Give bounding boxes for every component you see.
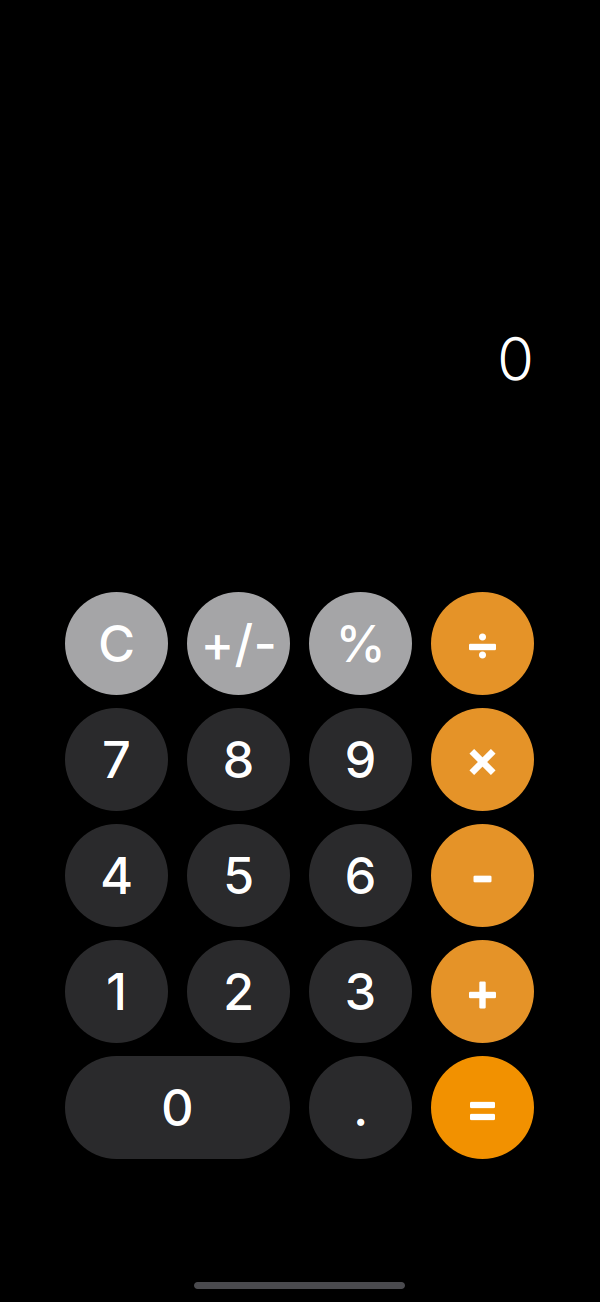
button[interactable]: Multiply bbox=[431, 708, 534, 811]
button[interactable]: Clear bbox=[65, 592, 168, 695]
button[interactable]: 7 bbox=[65, 708, 168, 811]
staticText: % bbox=[335, 613, 385, 674]
staticText: 4 bbox=[100, 845, 133, 906]
staticText: 5 bbox=[223, 845, 254, 906]
staticText: 9 bbox=[344, 729, 376, 790]
button[interactable]: Percent bbox=[309, 592, 412, 695]
button[interactable]: 8 bbox=[187, 708, 290, 811]
staticText: . bbox=[353, 1077, 368, 1138]
button[interactable]: Change sign bbox=[187, 592, 290, 695]
button[interactable]: 5 bbox=[187, 824, 290, 927]
button[interactable]: 9 bbox=[309, 708, 412, 811]
staticText: 8 bbox=[222, 729, 254, 790]
button[interactable]: 4 bbox=[65, 824, 168, 927]
button[interactable]: Divide bbox=[431, 592, 534, 695]
button[interactable]: Equals bbox=[431, 1056, 534, 1159]
staticText: 2 bbox=[223, 961, 254, 1022]
button[interactable]: Add bbox=[431, 940, 534, 1043]
button[interactable]: Subtract bbox=[431, 824, 534, 927]
button[interactable]: 1 bbox=[65, 940, 168, 1043]
button[interactable]: 2 bbox=[187, 940, 290, 1043]
button[interactable]: 6 bbox=[309, 824, 412, 927]
staticText: 3 bbox=[344, 961, 376, 1022]
button[interactable]: 3 bbox=[309, 940, 412, 1043]
staticText: 1 bbox=[106, 961, 127, 1022]
staticText: 6 bbox=[344, 845, 376, 906]
staticText: 0 bbox=[497, 323, 534, 395]
button[interactable]: 0 bbox=[65, 1056, 290, 1159]
staticText: 7 bbox=[102, 729, 131, 790]
button[interactable]: Decimal point bbox=[309, 1056, 412, 1159]
staticText: 0 bbox=[161, 1077, 194, 1138]
staticText: +/- bbox=[200, 613, 276, 674]
staticText: C bbox=[98, 613, 135, 674]
